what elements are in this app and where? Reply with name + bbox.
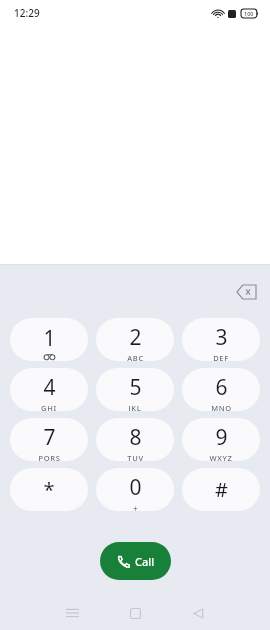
button[interactable]: 3 bbox=[182, 318, 260, 361]
button[interactable]: Recents bbox=[50, 596, 94, 630]
staticText: 8 bbox=[129, 423, 142, 452]
button[interactable]: Home bbox=[113, 596, 157, 630]
button[interactable]: 2 bbox=[96, 318, 174, 361]
button[interactable]: 8 bbox=[96, 418, 174, 461]
staticText: + bbox=[133, 503, 138, 511]
staticText: 3 bbox=[215, 323, 228, 352]
staticText: ABC bbox=[127, 353, 144, 361]
staticText: 0 bbox=[129, 473, 142, 502]
staticText: JKL bbox=[128, 403, 142, 411]
staticText: GHI bbox=[41, 403, 57, 411]
staticText: 4 bbox=[43, 373, 56, 402]
staticText: PQRS bbox=[38, 453, 61, 461]
button[interactable]: 6 bbox=[182, 368, 260, 411]
button[interactable]: Back bbox=[176, 596, 220, 630]
staticText: 5 bbox=[129, 373, 142, 402]
button[interactable]: 4 bbox=[10, 368, 88, 411]
button[interactable]: 0 bbox=[96, 468, 174, 511]
staticText: DEF bbox=[213, 353, 229, 361]
button[interactable]: 7 bbox=[10, 418, 88, 461]
staticText: 100 bbox=[244, 10, 254, 17]
button[interactable]: # bbox=[182, 468, 260, 511]
staticText: 6 bbox=[215, 373, 228, 402]
staticText: 2 bbox=[129, 323, 142, 352]
staticText: 9 bbox=[215, 423, 228, 452]
staticText: 7 bbox=[43, 423, 56, 452]
staticText: 12:29 bbox=[14, 6, 40, 20]
button[interactable]: 1 bbox=[10, 318, 88, 361]
button[interactable]: Call bbox=[100, 542, 171, 580]
staticText: 1 bbox=[43, 324, 56, 353]
button[interactable]: * bbox=[10, 468, 88, 511]
button[interactable]: Backspace bbox=[230, 276, 262, 308]
staticText: WXYZ bbox=[209, 453, 233, 461]
button[interactable]: 9 bbox=[182, 418, 260, 461]
staticText: MNO bbox=[211, 403, 232, 411]
button[interactable]: 5 bbox=[96, 368, 174, 411]
staticText: * bbox=[43, 476, 55, 503]
staticText: TUV bbox=[127, 453, 144, 461]
staticText: Call bbox=[135, 554, 155, 569]
staticText: # bbox=[215, 476, 228, 503]
